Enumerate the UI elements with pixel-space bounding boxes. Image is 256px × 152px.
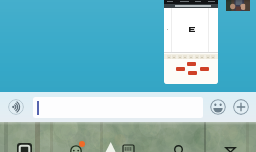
button[interactable]: Arrow key: [176, 67, 185, 71]
button[interactable]: Home: [174, 145, 183, 152]
button[interactable]: Keyboard: [123, 145, 134, 152]
button[interactable]: Emoji: [210, 99, 226, 115]
button[interactable]: Arrow key: [200, 67, 209, 71]
button[interactable]: App: [17, 143, 32, 152]
button[interactable]: Arrow key: [187, 62, 196, 66]
button[interactable]: [33, 97, 203, 118]
button[interactable]: Back: [225, 147, 236, 152]
button[interactable]: Voice message: [8, 99, 24, 115]
button[interactable]: Attach: [233, 99, 249, 115]
button[interactable]: Emoji: [70, 145, 82, 152]
button[interactable]: Arrow key: [188, 71, 197, 75]
